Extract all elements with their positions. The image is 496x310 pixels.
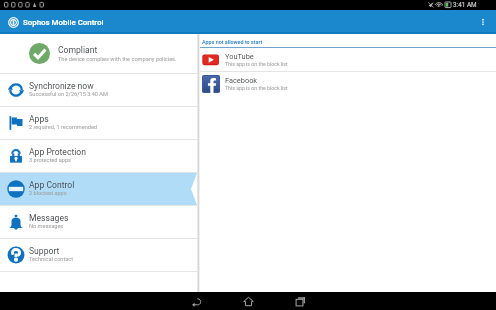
staticText: Support: [29, 246, 60, 256]
button[interactable]: Compliant: [0, 34, 197, 73]
button[interactable]: Apps: [0, 107, 197, 139]
button[interactable]: Recents: [274, 292, 326, 310]
button[interactable]: Synchronize now: [0, 74, 197, 106]
staticText: The device complies with the company pol…: [58, 56, 177, 63]
staticText: Successful on 2/26/15 3:40 AM: [29, 91, 108, 98]
staticText: Technical contact: [29, 256, 74, 263]
button[interactable]: Support: [0, 239, 197, 271]
button[interactable]: Home: [222, 292, 274, 310]
staticText: Apps not allowed to start: [202, 39, 263, 45]
button[interactable]: App Protection: [0, 140, 197, 172]
staticText: 2 blocked apps: [29, 190, 67, 197]
staticText: Apps: [29, 114, 49, 124]
staticText: 3:41 AM: [453, 1, 477, 9]
staticText: Messages: [29, 213, 69, 223]
staticText: 3 protected apps: [29, 157, 71, 164]
staticText: This app is on the block list: [225, 61, 288, 67]
staticText: App Control: [29, 180, 75, 190]
button[interactable]: More options: [472, 10, 494, 34]
staticText: This app is on the block list: [225, 85, 288, 91]
staticText: No messages: [29, 223, 64, 230]
staticText: Facebook: [225, 76, 258, 85]
button[interactable]: Facebook: [200, 72, 496, 95]
staticText: YouTube: [225, 52, 254, 61]
staticText: App Protection: [29, 147, 86, 157]
staticText: Compliant: [58, 45, 98, 55]
staticText: Synchronize now: [29, 81, 94, 91]
staticText: Sophos Mobile Control: [23, 18, 104, 27]
button[interactable]: Messages: [0, 206, 197, 238]
staticText: 2 required, 1 recommended: [29, 124, 98, 131]
button[interactable]: YouTube: [200, 48, 496, 71]
button[interactable]: Back: [170, 292, 222, 310]
button[interactable]: App Control: [0, 173, 197, 205]
